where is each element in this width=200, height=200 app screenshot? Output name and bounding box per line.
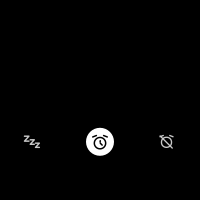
button[interactable]: Stop alarm: [78, 122, 122, 162]
button[interactable]: Snooze: [5, 122, 59, 162]
button[interactable]: Turn off alarm: [139, 121, 193, 161]
